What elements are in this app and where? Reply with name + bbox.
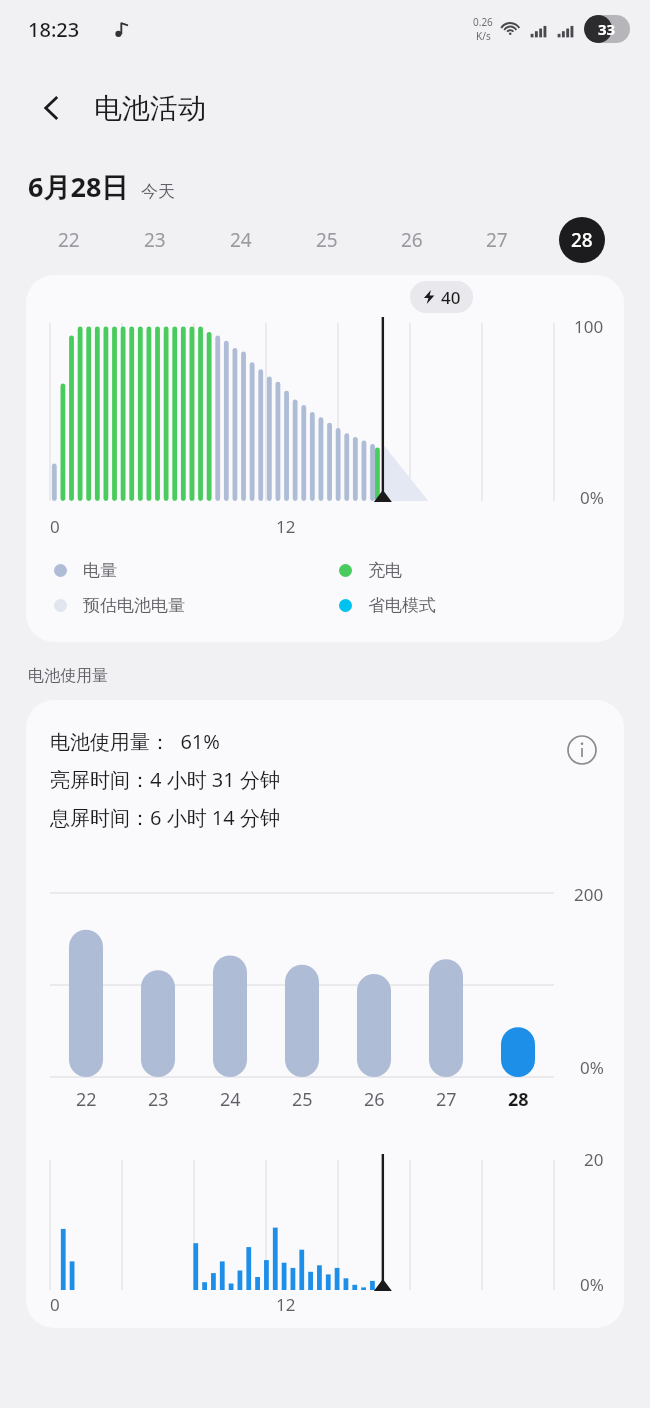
button[interactable]: Back (26, 82, 78, 134)
button[interactable]: 充电 (339, 560, 624, 581)
button[interactable]: 22 (26, 205, 112, 275)
staticText: 100 (574, 315, 604, 338)
staticText: 23 (148, 1087, 169, 1112)
staticText: 22 (76, 1087, 97, 1112)
button[interactable]: 23 (112, 205, 198, 275)
staticText: 20 (584, 1148, 604, 1171)
staticText: 0% (580, 486, 604, 509)
button[interactable]: 26 (369, 205, 454, 275)
button[interactable]: 电池使用量： 61% (26, 700, 624, 1328)
button[interactable]: 27 (454, 205, 539, 275)
button[interactable]: 预估电池电量 (54, 595, 339, 616)
staticText: 充电 (368, 560, 402, 581)
staticText: 12 (276, 515, 296, 538)
staticText: 0 (50, 1293, 60, 1316)
staticText: 电量 (83, 560, 117, 581)
staticText: 0% (580, 1273, 604, 1296)
staticText: K/s (476, 29, 491, 43)
staticText: 12 (276, 1293, 296, 1316)
staticText: 33 (598, 19, 616, 39)
staticText: 6月28日 (28, 168, 129, 205)
staticText: 电池使用量 (28, 666, 108, 686)
staticText: 40 (441, 286, 461, 309)
button[interactable]: 24 (198, 205, 284, 275)
staticText: 0% (580, 1056, 604, 1079)
staticText: 24 (220, 1087, 241, 1112)
button[interactable]: 40 (26, 275, 624, 642)
staticText: 23 (144, 227, 166, 253)
staticText: 25 (316, 227, 338, 253)
button[interactable]: Info (560, 728, 604, 772)
staticText: 0.26 (473, 15, 493, 29)
button[interactable]: 40 (422, 281, 461, 313)
staticText: 亮屏时间：4 小时 31 分钟 (50, 766, 280, 793)
staticText: 18:23 (28, 16, 80, 43)
staticText: 24 (230, 227, 252, 253)
button[interactable]: 28 (539, 205, 624, 275)
staticText: 25 (292, 1087, 313, 1112)
staticText: 22 (58, 227, 80, 253)
staticText: 27 (436, 1087, 457, 1112)
button[interactable]: 电量 (54, 560, 339, 581)
button[interactable]: 25 (284, 205, 369, 275)
staticText: 预估电池电量 (83, 595, 185, 616)
staticText: 200 (574, 883, 604, 906)
staticText: 电池活动 (94, 91, 206, 126)
staticText: 0 (50, 515, 60, 538)
button[interactable]: 省电模式 (339, 595, 624, 616)
staticText: 27 (486, 227, 508, 253)
staticText: 26 (364, 1087, 385, 1112)
staticText: 26 (401, 227, 423, 253)
staticText: 息屏时间：6 小时 14 分钟 (50, 804, 280, 831)
staticText: 今天 (141, 181, 175, 202)
staticText: 28 (571, 227, 593, 253)
staticText: 28 (508, 1087, 529, 1112)
staticText: 电池使用量： 61% (50, 728, 220, 755)
staticText: 省电模式 (368, 595, 436, 616)
